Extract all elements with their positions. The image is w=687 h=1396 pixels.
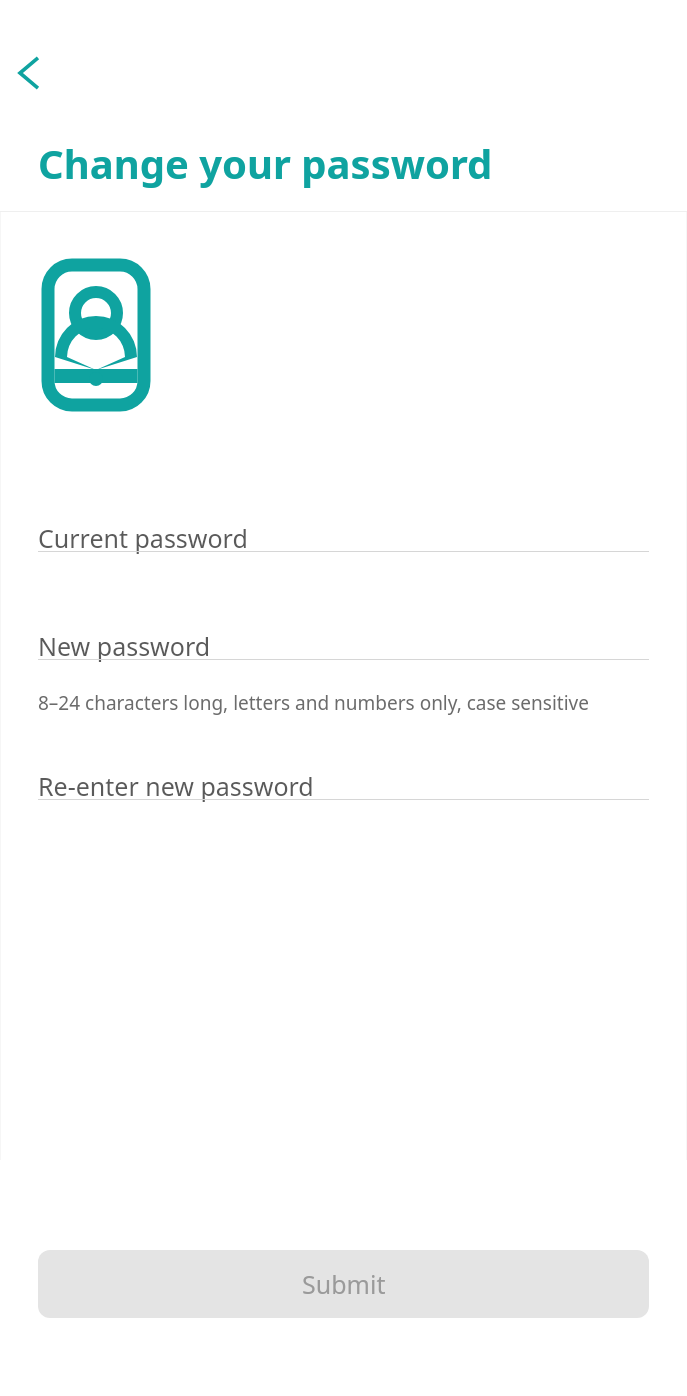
staticText: New password [38, 629, 211, 663]
staticText: Submit [302, 1267, 386, 1301]
button[interactable]: Re-enter new password [38, 765, 649, 811]
staticText: Current password [38, 521, 248, 555]
staticText: Change your password [38, 136, 493, 190]
button[interactable]: Current password [38, 517, 649, 563]
button[interactable]: Back [2, 44, 60, 102]
button[interactable]: New password [38, 625, 649, 671]
button[interactable]: Submit [38, 1250, 649, 1318]
staticText: Re-enter new password [38, 769, 314, 803]
staticText: 8–24 characters long, letters and number… [38, 690, 589, 716]
